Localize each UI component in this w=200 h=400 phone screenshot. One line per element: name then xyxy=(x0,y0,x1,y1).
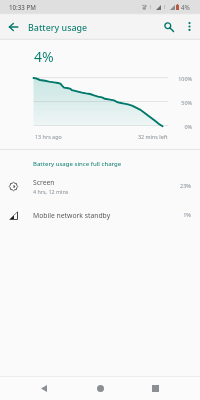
staticText: 1% xyxy=(167,211,191,219)
staticText: 10:33 PM xyxy=(9,3,36,11)
staticText: 4% xyxy=(34,47,54,66)
staticText: 13 hrs ago xyxy=(35,133,62,140)
staticText: Battery usage since full charge xyxy=(33,160,122,168)
button[interactable]: Search xyxy=(159,17,178,36)
staticText: 4% xyxy=(181,3,190,11)
staticText: 100% xyxy=(160,75,192,82)
button[interactable]: More options xyxy=(180,17,199,36)
staticText: 0% xyxy=(160,123,192,130)
button[interactable]: Back xyxy=(34,378,54,398)
button[interactable]: Screen xyxy=(0,174,200,198)
button[interactable]: Home xyxy=(90,378,110,398)
staticText: 23% xyxy=(167,182,191,190)
staticText: Battery usage xyxy=(28,21,88,33)
staticText: 50% xyxy=(160,99,192,106)
staticText: 4 hrs, 12 mins xyxy=(33,188,69,195)
button[interactable]: Mobile network standby xyxy=(0,205,200,225)
button[interactable]: Recents xyxy=(145,378,165,398)
staticText: Mobile network standby xyxy=(33,211,111,220)
button[interactable]: Back xyxy=(3,16,24,37)
staticText: 32 mins left xyxy=(138,133,168,140)
staticText: Screen xyxy=(33,178,55,187)
